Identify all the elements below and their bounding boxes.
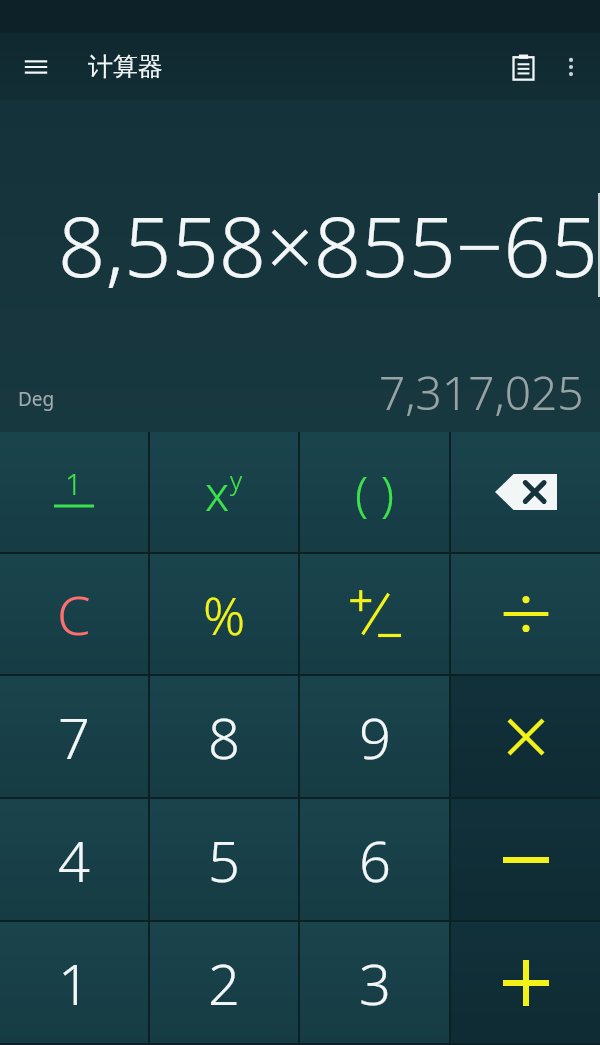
staticText: 计算器 [88, 51, 163, 82]
staticText: 9 [359, 699, 391, 775]
staticText: 2 [208, 945, 240, 1021]
button[interactable]: 3 [300, 922, 449, 1043]
staticText: 7,317,025 [379, 361, 584, 424]
button[interactable]: x to the power y [150, 432, 298, 552]
staticText: 1 [58, 945, 90, 1021]
staticText: y [230, 462, 243, 497]
staticText: 4 [58, 822, 90, 898]
button[interactable]: 9 [300, 676, 449, 797]
button[interactable]: 1/x [0, 432, 148, 552]
button[interactable]: Backspace [451, 432, 600, 552]
staticText: x [205, 460, 230, 525]
button[interactable]: Divide [451, 554, 600, 674]
button[interactable]: Plus minus [300, 554, 449, 674]
button[interactable]: Operator [451, 922, 600, 1043]
staticText: 8,558×855−65 [58, 188, 598, 301]
button[interactable]: 5 [150, 799, 298, 920]
button[interactable]: 7 [0, 676, 148, 797]
staticText: 5 [208, 822, 240, 898]
button[interactable]: More options [548, 44, 594, 90]
button[interactable]: Percent [150, 554, 298, 674]
staticText: 8 [208, 699, 240, 775]
button[interactable]: 4 [0, 799, 148, 920]
staticText: ( ) [355, 460, 395, 525]
button[interactable]: History [498, 42, 548, 92]
staticText: 7 [58, 699, 90, 775]
staticText: Deg [18, 386, 55, 412]
staticText: 3 [359, 945, 391, 1021]
button[interactable]: 6 [300, 799, 449, 920]
staticText: % [203, 579, 246, 650]
button[interactable]: Menu [14, 45, 58, 89]
staticText: C [57, 577, 91, 651]
staticText: 1 [65, 463, 83, 504]
staticText: 6 [359, 822, 391, 898]
button[interactable]: 2 [150, 922, 298, 1043]
button[interactable]: Operator [451, 799, 600, 920]
button[interactable]: 8 [150, 676, 298, 797]
button[interactable]: Clear [0, 554, 148, 674]
button[interactable]: Parentheses [300, 432, 449, 552]
button[interactable]: 1 [0, 922, 148, 1043]
button[interactable]: Operator [451, 676, 600, 797]
